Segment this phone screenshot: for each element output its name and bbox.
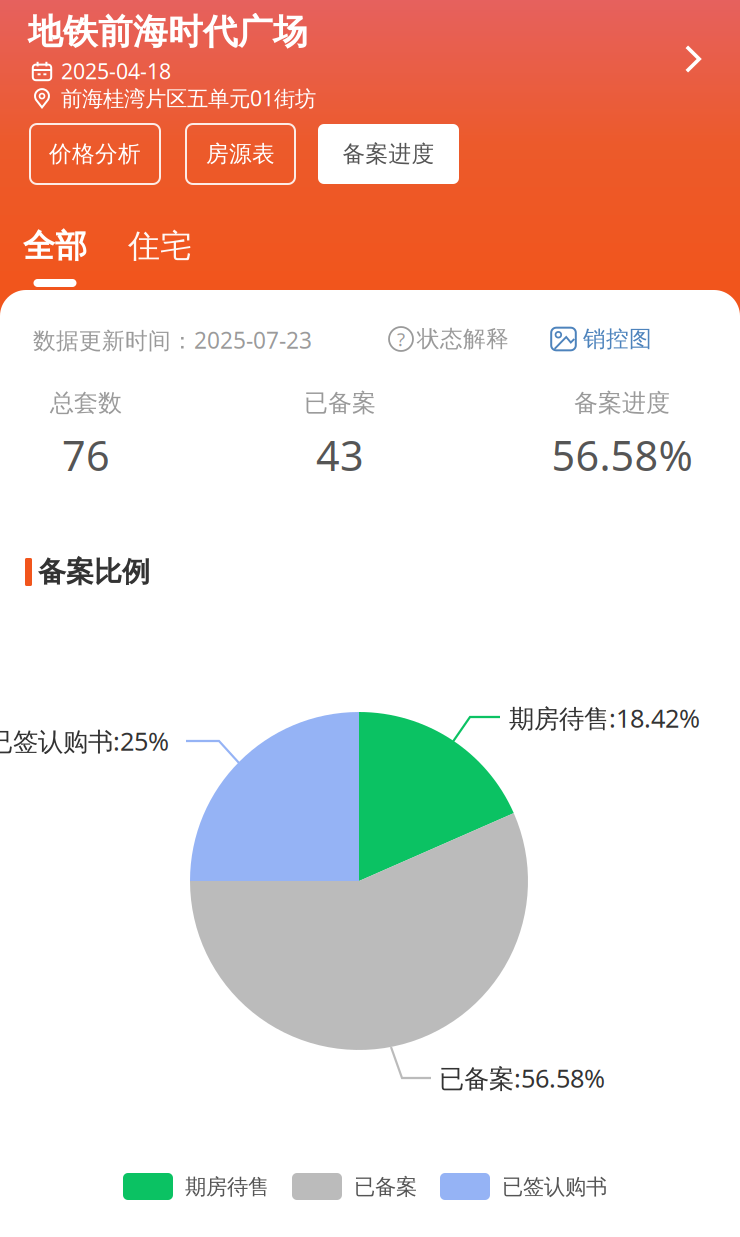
staticText: 数据更新时间：2025-07-23 [33,325,312,355]
staticText: 住宅 [128,226,192,266]
staticText: 地铁前海时代广场 [28,11,308,53]
staticText: 全部 [23,226,87,266]
button[interactable]: 住宅 [117,222,203,290]
staticText: 房源表 [206,140,275,168]
staticText: 状态解释 [417,325,509,353]
staticText: 已备案 [304,388,376,418]
button[interactable]: ? [388,324,509,354]
staticText: 56.58% [551,428,692,482]
staticText: 已签认购书:25% [0,724,169,758]
button[interactable]: 全部 [12,222,98,290]
staticText: 2025-04-18 [61,57,171,85]
staticText: 总套数 [50,388,122,418]
staticText: 价格分析 [49,140,141,168]
staticText: 期房待售:18.42% [509,701,700,735]
staticText: 已签认购书 [502,1174,607,1200]
staticText: 期房待售 [185,1174,269,1200]
staticText: 备案进度 [342,140,434,168]
staticText: 备案比例 [38,555,150,589]
button[interactable]: 销控图 [550,324,652,354]
staticText: 备案进度 [574,388,670,418]
button[interactable]: 房源表 [186,124,295,184]
button[interactable]: 备案进度 [318,124,459,184]
button[interactable]: Open project detail [669,35,717,83]
button[interactable]: 价格分析 [30,124,160,184]
staticText: 76 [62,428,110,482]
staticText: 已备案:56.58% [439,1061,605,1095]
staticText: 已备案 [354,1174,417,1200]
staticText: 43 [316,428,364,482]
staticText: 前海桂湾片区五单元01街坊 [61,84,316,112]
staticText: ? [397,327,405,351]
staticText: 销控图 [583,325,652,353]
